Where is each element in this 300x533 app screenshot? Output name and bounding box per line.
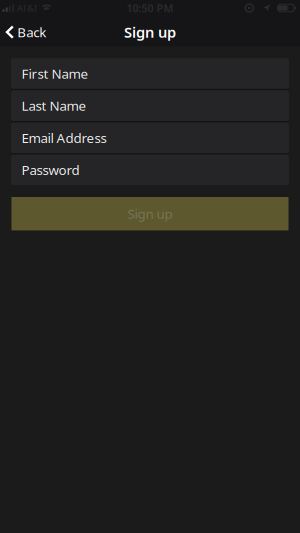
staticText: Last Name <box>21 97 86 114</box>
staticText: Sign up <box>127 205 172 222</box>
staticText: Password <box>21 161 79 179</box>
staticText: 10:50 PM <box>126 1 173 15</box>
button[interactable]: Last Name <box>11 90 289 121</box>
staticText: Email Address <box>21 129 106 147</box>
staticText: First Name <box>21 65 88 82</box>
button[interactable]: Password <box>11 155 289 185</box>
staticText: Back <box>17 23 46 41</box>
staticText: AT&T <box>17 2 38 14</box>
button[interactable]: Email Address <box>11 122 289 153</box>
button[interactable]: First Name <box>11 58 289 89</box>
button[interactable]: Sign up <box>11 197 288 230</box>
button[interactable]: Back <box>6 23 46 41</box>
staticText: Sign up <box>124 22 176 42</box>
